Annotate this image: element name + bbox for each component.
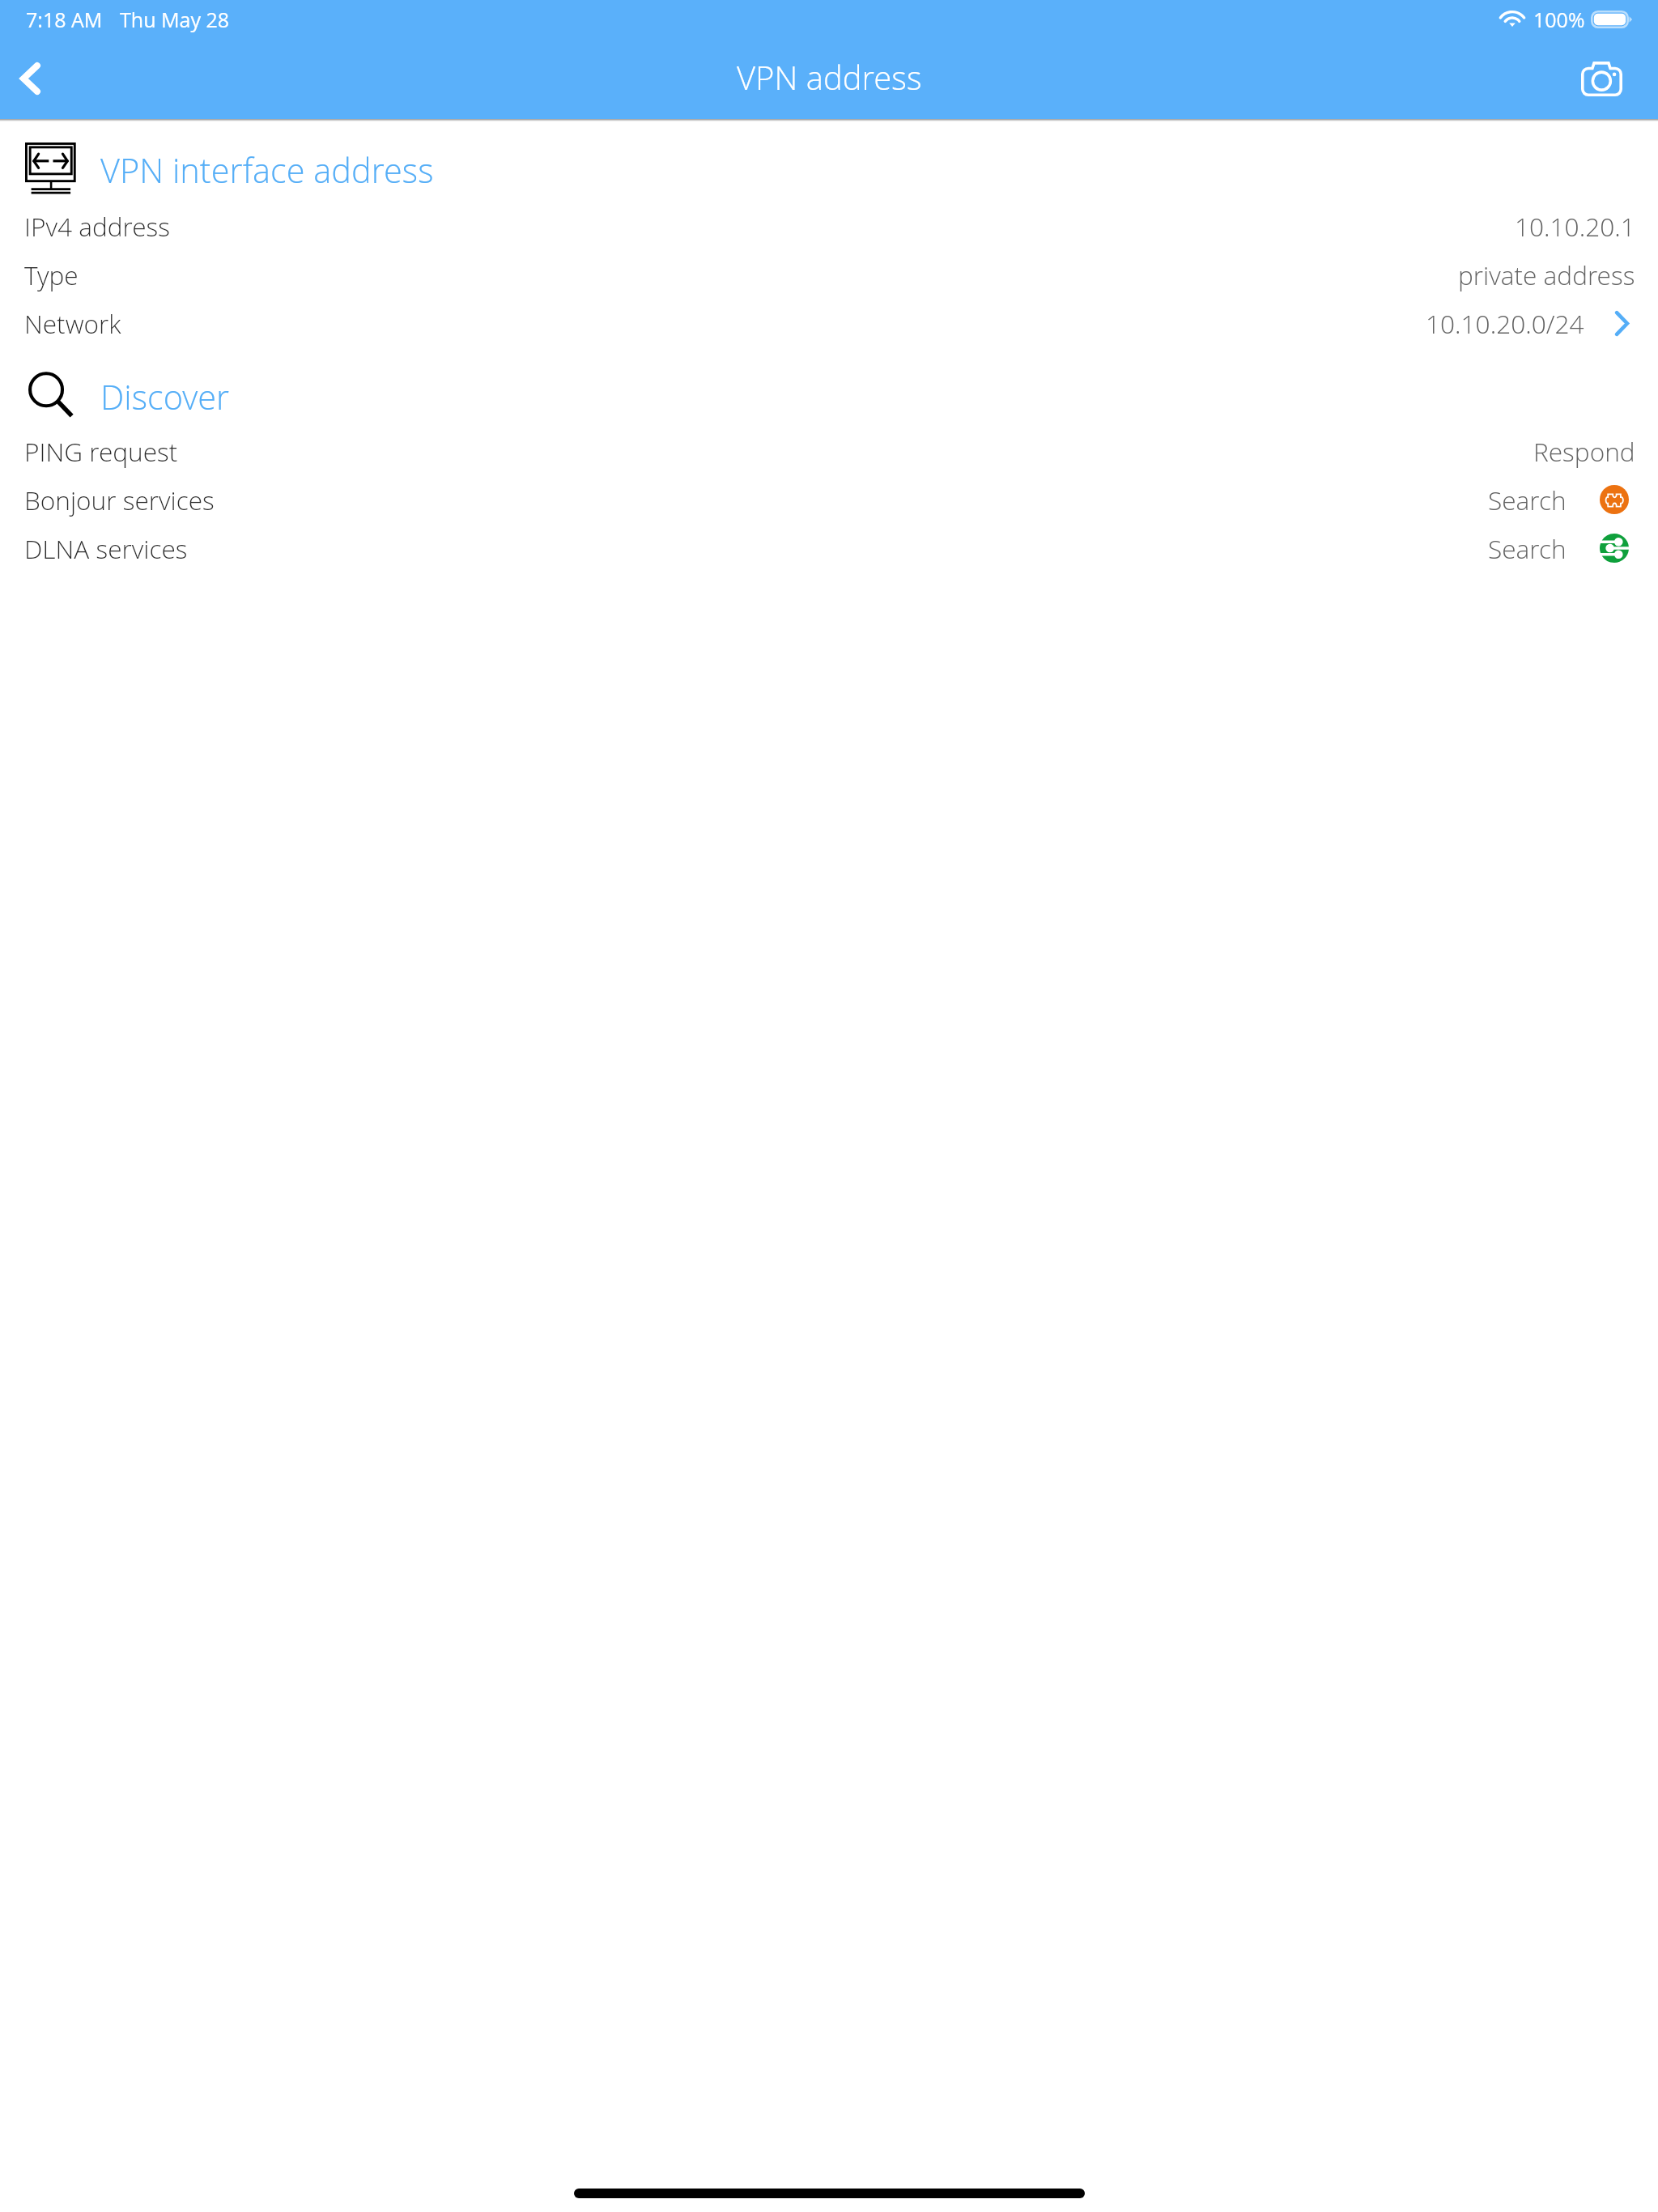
staticText: Search: [1488, 531, 1567, 566]
staticText: Search: [1488, 483, 1567, 517]
staticText: Thu May 28: [120, 6, 230, 33]
staticText: Network: [24, 306, 121, 341]
staticText: 7:18 AM: [26, 6, 103, 33]
staticText: VPN address: [737, 55, 922, 99]
button[interactable]: PING request: [0, 427, 1658, 475]
staticText: 100%: [1533, 6, 1585, 33]
staticText: 10.10.20.1: [1515, 209, 1635, 244]
staticText: Type: [24, 257, 79, 292]
staticText: DLNA services: [24, 531, 188, 566]
button[interactable]: Bonjour services: [0, 475, 1658, 524]
button[interactable]: IPv4 address: [0, 202, 1658, 250]
staticText: Bonjour services: [24, 483, 215, 517]
staticText: Discover: [100, 374, 230, 420]
staticText: PING request: [24, 434, 178, 469]
button[interactable]: Network: [0, 299, 1658, 347]
button[interactable]: Type: [0, 250, 1658, 299]
button[interactable]: Camera: [1569, 39, 1658, 119]
staticText: 10.10.20.0/24: [1426, 306, 1584, 341]
staticText: IPv4 address: [24, 209, 170, 244]
staticText: private address: [1458, 257, 1635, 292]
button[interactable]: DLNA services: [0, 524, 1658, 572]
button[interactable]: Back: [0, 39, 62, 119]
staticText: VPN interface address: [100, 147, 434, 194]
staticText: Respond: [1533, 434, 1635, 469]
